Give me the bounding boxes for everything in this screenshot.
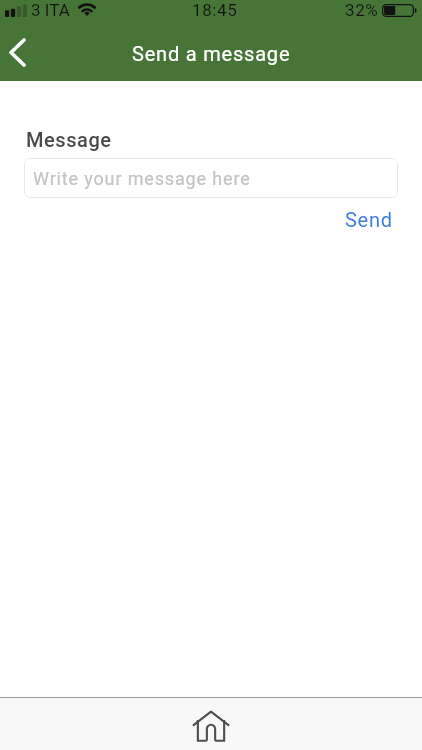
staticText: Message: [26, 128, 112, 151]
staticText: 3 ITA: [31, 0, 70, 20]
staticText: Send: [345, 208, 393, 231]
staticText: 32%: [345, 0, 379, 20]
button[interactable]: Home: [184, 699, 238, 750]
button[interactable]: Back: [0, 26, 34, 81]
staticText: Send a message: [132, 42, 291, 65]
staticText: Write your message here: [33, 168, 251, 189]
staticText: 18:45: [192, 0, 238, 20]
button[interactable]: Write your message here: [24, 158, 398, 198]
button[interactable]: Send: [345, 208, 393, 231]
